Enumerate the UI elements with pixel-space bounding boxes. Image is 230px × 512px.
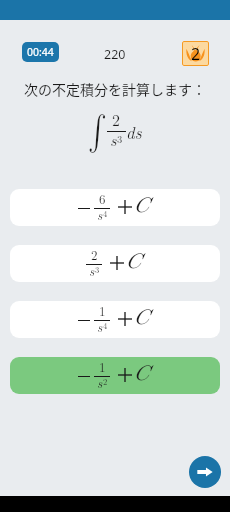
- staticText: 3: [117, 131, 123, 146]
- button[interactable]: 1: [10, 357, 220, 394]
- staticText: C: [133, 363, 149, 384]
- staticText: 220: [104, 46, 126, 63]
- staticText: ∫: [88, 114, 100, 148]
- staticText: s: [97, 373, 103, 391]
- button[interactable]: Streak 2 days: [182, 41, 209, 66]
- staticText: C: [133, 195, 149, 216]
- button[interactable]: 00:44: [22, 42, 59, 62]
- staticText: s: [97, 317, 103, 335]
- staticText: 2: [103, 375, 108, 387]
- button[interactable]: 1: [10, 301, 220, 338]
- staticText: 2: [191, 43, 201, 65]
- staticText: 1: [99, 357, 106, 375]
- staticText: 2: [112, 108, 121, 131]
- button[interactable]: 6: [10, 189, 220, 226]
- staticText: 4: [103, 319, 108, 331]
- staticText: 00:44: [27, 45, 54, 59]
- staticText: 4: [103, 207, 108, 219]
- staticText: 次の不定積分を計算します：: [24, 79, 206, 99]
- staticText: s: [89, 261, 95, 279]
- staticText: s: [110, 128, 117, 151]
- staticText: s: [97, 205, 103, 223]
- button[interactable]: 2: [10, 245, 220, 282]
- staticText: 2: [91, 245, 98, 263]
- button[interactable]: Next question: [189, 456, 221, 488]
- staticText: C: [125, 251, 141, 272]
- staticText: C: [133, 307, 149, 328]
- staticText: ds: [126, 120, 142, 144]
- staticText: 6: [99, 189, 106, 207]
- staticText: 1: [99, 301, 106, 319]
- staticText: 3: [95, 263, 100, 275]
